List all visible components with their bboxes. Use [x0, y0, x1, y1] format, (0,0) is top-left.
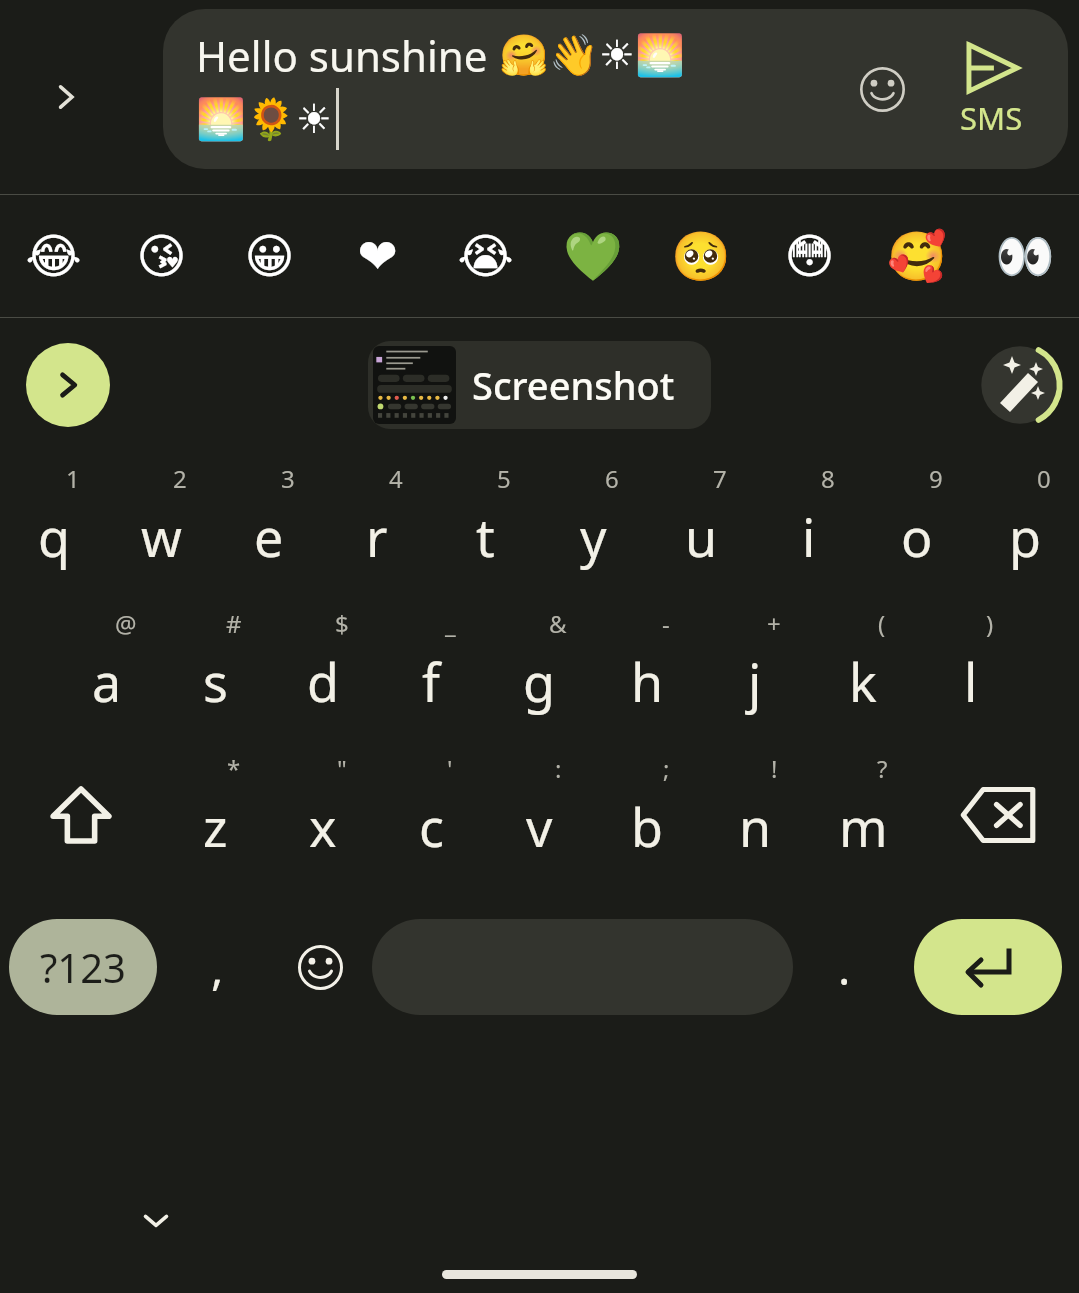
button[interactable]: Emoji — [846, 53, 918, 125]
staticText: ❤️ — [357, 228, 398, 284]
button[interactable]: + — [701, 597, 809, 742]
button[interactable]: Enter — [914, 919, 1062, 1015]
button[interactable]: Hello sunshine — [163, 9, 1068, 169]
button[interactable]: 7 — [647, 452, 755, 597]
staticText: $ — [335, 607, 349, 640]
button[interactable]: 😭 — [431, 195, 539, 317]
staticText: 😳 — [784, 228, 835, 284]
staticText: 1 — [66, 462, 80, 495]
button[interactable]: _ — [377, 597, 485, 742]
staticText: f — [422, 646, 440, 717]
button[interactable]: 💚 — [539, 195, 647, 317]
button[interactable]: Shift — [0, 742, 161, 887]
button[interactable]: ! — [701, 742, 809, 887]
staticText: a — [92, 646, 122, 717]
button[interactable]: Space — [372, 919, 793, 1015]
button[interactable]: 1 — [0, 452, 107, 597]
staticText: - — [662, 607, 670, 640]
staticText: h — [631, 646, 664, 717]
button[interactable]: 😂 — [0, 195, 107, 317]
staticText: r — [366, 501, 388, 572]
button[interactable]: 🥰 — [863, 195, 971, 317]
button[interactable]: - — [593, 597, 701, 742]
staticText: u — [685, 501, 718, 572]
button[interactable]: ' — [377, 742, 485, 887]
button[interactable]: ( — [809, 597, 917, 742]
staticText: w — [141, 501, 182, 572]
button[interactable]: 5 — [431, 452, 539, 597]
staticText: ?123 — [40, 940, 126, 994]
staticText: _ — [445, 607, 456, 640]
button[interactable]: Screenshot — [368, 341, 711, 429]
button[interactable]: Show toolbar — [26, 343, 110, 427]
staticText: 🤗 — [499, 32, 549, 79]
staticText: z — [203, 791, 228, 862]
staticText: ; — [663, 752, 670, 785]
staticText: , — [211, 936, 224, 999]
button[interactable]: Emoji keyboard — [269, 887, 372, 1047]
staticText: b — [631, 791, 663, 862]
staticText: ) — [986, 607, 994, 640]
staticText: 3 — [281, 462, 295, 495]
button[interactable]: 9 — [863, 452, 971, 597]
staticText: l — [964, 646, 978, 717]
button[interactable]: 👀 — [971, 195, 1079, 317]
button[interactable]: 😀 — [215, 195, 323, 317]
button[interactable]: Send SMS — [936, 39, 1046, 139]
button[interactable]: @ — [53, 597, 161, 742]
staticText: 🌻 — [246, 96, 296, 143]
staticText: q — [38, 501, 70, 572]
button[interactable]: Magic compose — [975, 340, 1065, 430]
button[interactable]: , — [166, 887, 269, 1047]
button[interactable]: # — [161, 597, 269, 742]
staticText: " — [337, 752, 347, 785]
staticText: ? — [877, 752, 888, 785]
button[interactable]: ?123 — [9, 919, 157, 1015]
button[interactable]: : — [485, 742, 593, 887]
button[interactable]: ; — [593, 742, 701, 887]
staticText: k — [849, 646, 877, 717]
button[interactable]: 😘 — [107, 195, 215, 317]
staticText: e — [254, 501, 284, 572]
staticText: 🥺 — [671, 228, 731, 284]
staticText: 😀 — [244, 228, 295, 284]
button[interactable]: 4 — [323, 452, 431, 597]
button[interactable]: 😳 — [755, 195, 863, 317]
button[interactable]: Backspace — [917, 742, 1079, 887]
staticText: 😂 — [25, 228, 82, 284]
staticText: 🌅 — [196, 96, 246, 143]
staticText: 🥰 — [887, 228, 947, 284]
staticText: 💚 — [563, 228, 623, 284]
staticText: 9 — [929, 462, 943, 495]
button[interactable]: " — [269, 742, 377, 887]
button[interactable]: * — [161, 742, 269, 887]
button[interactable]: 6 — [539, 452, 647, 597]
button[interactable]: $ — [269, 597, 377, 742]
button[interactable]: ? — [809, 742, 917, 887]
button[interactable]: Expand toolbar — [34, 65, 98, 129]
staticText: 👀 — [995, 228, 1055, 284]
button[interactable]: 3 — [215, 452, 323, 597]
staticText: d — [307, 646, 339, 717]
staticText: p — [1009, 501, 1041, 572]
staticText: m — [839, 791, 888, 862]
button[interactable]: 🥺 — [647, 195, 755, 317]
button[interactable]: ) — [917, 597, 1025, 742]
staticText: ! — [771, 752, 778, 785]
button[interactable]: . — [793, 887, 896, 1047]
staticText: n — [739, 791, 772, 862]
staticText: i — [802, 501, 816, 572]
staticText: c — [419, 791, 444, 862]
staticText: 2 — [173, 462, 187, 495]
staticText: Hello sunshine — [196, 27, 499, 84]
button[interactable]: ❤️ — [323, 195, 431, 317]
button[interactable]: 2 — [107, 452, 215, 597]
staticText: 😘 — [136, 228, 187, 284]
button[interactable]: 8 — [755, 452, 863, 597]
staticText: . — [838, 936, 851, 999]
button[interactable]: Hide keyboard — [128, 1192, 184, 1248]
staticText: 👋 — [549, 32, 599, 79]
button[interactable]: & — [485, 597, 593, 742]
button[interactable]: 0 — [971, 452, 1079, 597]
staticText: Screenshot — [472, 359, 675, 411]
